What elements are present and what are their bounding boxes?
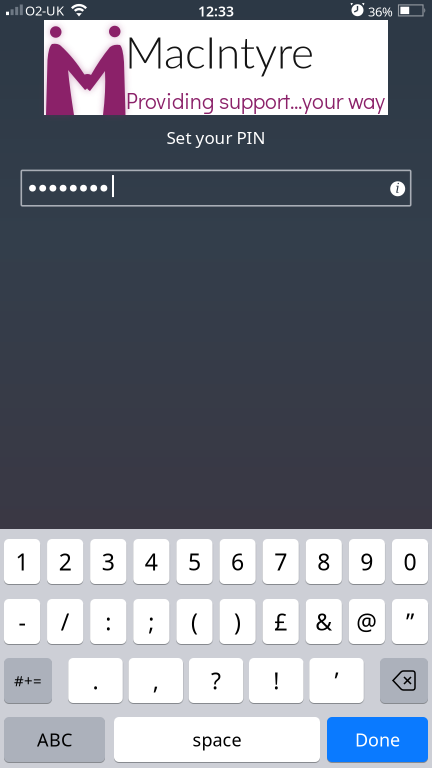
staticText: . [92, 665, 98, 696]
button[interactable]: ) [219, 599, 256, 644]
staticText: 1 [16, 546, 29, 577]
button[interactable]: 1 [4, 539, 40, 584]
staticText: : [105, 606, 111, 637]
button[interactable]: Done [327, 717, 428, 762]
button[interactable]: ( [176, 599, 213, 644]
staticText: - [19, 606, 26, 637]
staticText: & [315, 606, 332, 637]
staticText: 9 [360, 546, 373, 577]
staticText: ” [406, 606, 414, 637]
staticText: / [61, 606, 70, 637]
button[interactable]: 2 [47, 539, 83, 584]
staticText: 7 [274, 546, 287, 577]
button[interactable]: space [114, 717, 320, 762]
button[interactable]: @ [349, 599, 385, 644]
staticText: MacIntyre [125, 25, 314, 78]
staticText: ) [234, 606, 241, 637]
staticText: Providing support...your way [126, 86, 385, 115]
staticText: space [192, 727, 241, 751]
button[interactable]: ” [392, 599, 428, 644]
button[interactable]: 0 [392, 539, 428, 584]
staticText: ( [191, 606, 198, 637]
staticText: ? [211, 665, 221, 696]
button[interactable]: #+= [4, 658, 52, 703]
button[interactable]: ? [189, 658, 243, 703]
staticText: ; [148, 606, 154, 637]
staticText: 5 [188, 546, 201, 577]
staticText: ABC [37, 727, 72, 751]
staticText: O2-UK [25, 2, 64, 19]
button[interactable]: Delete [380, 658, 428, 703]
button[interactable]: 6 [219, 539, 256, 584]
button[interactable]: , [128, 658, 183, 703]
staticText: i [395, 181, 399, 196]
button[interactable]: 3 [90, 539, 126, 584]
button[interactable]: : [90, 599, 126, 644]
staticText: ’ [334, 665, 338, 696]
button[interactable]: - [4, 599, 40, 644]
button[interactable]: 4 [133, 539, 169, 584]
staticText: 4 [145, 546, 158, 577]
staticText: 3 [102, 546, 115, 577]
staticText: Set your PIN [166, 126, 265, 149]
button[interactable]: PIN information [20, 170, 411, 207]
button[interactable]: 9 [349, 539, 385, 584]
button[interactable]: . [68, 658, 123, 703]
staticText: £ [274, 606, 287, 637]
staticText: @ [356, 606, 377, 637]
button[interactable]: & [306, 599, 342, 644]
button[interactable]: 8 [306, 539, 342, 584]
button[interactable]: ; [133, 599, 169, 644]
staticText: , [153, 665, 159, 696]
button[interactable]: ! [249, 658, 303, 703]
staticText: #+= [14, 670, 42, 690]
staticText: Done [355, 727, 400, 751]
button[interactable]: PIN entry [20, 170, 411, 207]
button[interactable]: £ [263, 599, 299, 644]
button[interactable]: ’ [309, 658, 364, 703]
button[interactable]: ABC [4, 717, 105, 762]
button[interactable]: 5 [176, 539, 213, 584]
staticText: 36% [368, 3, 393, 20]
staticText: 2 [59, 546, 72, 577]
staticText: 6 [231, 546, 244, 577]
staticText: 8 [317, 546, 330, 577]
button[interactable]: 7 [263, 539, 299, 584]
staticText: 0 [403, 546, 416, 577]
staticText: 12:33 [198, 2, 234, 20]
staticText: ! [273, 665, 279, 696]
button[interactable]: / [47, 599, 83, 644]
